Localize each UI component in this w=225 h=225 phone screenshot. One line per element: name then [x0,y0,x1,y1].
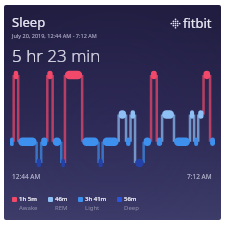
staticText: Sleep [12,13,46,31]
button[interactable]: 3h 41m [78,195,107,212]
button[interactable]: 46m [48,195,68,212]
button[interactable]: 56m [117,195,139,212]
staticText: 12:44 AM [12,172,41,181]
button[interactable]: Sleep stages chart [10,69,215,168]
staticText: 46m [55,195,68,203]
button[interactable]: Fitbit [170,14,212,32]
staticText: 1h 5m [19,195,37,203]
staticText: 3h 41m [85,195,107,203]
button[interactable]: 1h 5m [12,195,38,212]
staticText: Light [85,204,100,212]
staticText: REM [55,204,68,212]
staticText: 7:12 AM [187,172,212,181]
staticText: 56m [124,195,137,203]
staticText: Awake [19,204,38,212]
staticText: fitbit [183,14,212,32]
staticText: 5 hr 23 min [12,44,101,67]
staticText: Deep [124,204,139,212]
staticText: July 20, 2019, 12:44 AM - 7:12 AM [12,32,97,39]
